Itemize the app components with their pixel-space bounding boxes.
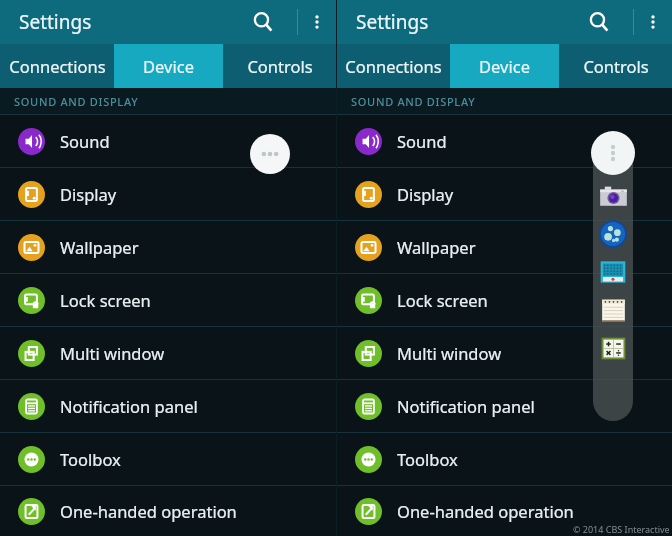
button[interactable]: Search xyxy=(579,2,619,42)
button[interactable]: Sound xyxy=(0,115,336,167)
button[interactable]: Notification panel xyxy=(337,380,672,432)
staticText: Toolbox xyxy=(60,448,121,470)
button[interactable]: Sound xyxy=(337,115,672,167)
button[interactable]: Display xyxy=(0,168,336,220)
staticText: Multi window xyxy=(60,342,165,364)
staticText: Controls xyxy=(247,55,313,77)
staticText: Wallpaper xyxy=(397,236,476,258)
button[interactable]: Controls xyxy=(559,44,672,88)
staticText: © 2014 CBS Interactive xyxy=(573,523,670,535)
staticText: Settings xyxy=(356,9,429,35)
button[interactable]: Toolbox xyxy=(250,134,290,174)
staticText: Device xyxy=(479,55,530,77)
staticText: Wallpaper xyxy=(60,236,139,258)
staticText: Settings xyxy=(19,9,92,35)
staticText: Display xyxy=(397,183,454,205)
staticText: Display xyxy=(60,183,117,205)
staticText: Multi window xyxy=(397,342,502,364)
staticText: Notification panel xyxy=(397,395,535,417)
staticText: Sound xyxy=(60,130,110,152)
button[interactable]: Wallpaper xyxy=(0,221,336,273)
button[interactable]: Display xyxy=(337,168,672,220)
button[interactable]: More options xyxy=(634,3,672,41)
button[interactable]: Calculator xyxy=(598,333,628,363)
staticText: One-handed operation xyxy=(397,500,574,522)
button[interactable]: Search xyxy=(243,2,283,42)
button[interactable]: Notification panel xyxy=(0,380,336,432)
staticText: Sound xyxy=(397,130,447,152)
button[interactable]: Device xyxy=(114,44,223,88)
button[interactable]: Voice recorder xyxy=(598,257,628,287)
staticText: Lock screen xyxy=(60,289,151,311)
button[interactable]: Wallpaper xyxy=(337,221,672,273)
button[interactable]: Lock screen xyxy=(337,274,672,326)
button[interactable]: Device xyxy=(450,44,559,88)
staticText: SOUND AND DISPLAY xyxy=(351,94,476,109)
button[interactable]: One-handed operation xyxy=(337,486,672,536)
staticText: SOUND AND DISPLAY xyxy=(14,94,139,109)
button[interactable]: Camera xyxy=(598,181,628,211)
button[interactable]: Toolbox menu xyxy=(591,131,635,175)
staticText: Notification panel xyxy=(60,395,198,417)
button[interactable]: Controls xyxy=(223,44,336,88)
button[interactable]: Memo xyxy=(598,295,628,325)
button[interactable]: Multi window xyxy=(337,327,672,379)
button[interactable]: Multi window xyxy=(0,327,336,379)
button[interactable]: One-handed operation xyxy=(0,486,336,536)
staticText: Connections xyxy=(9,55,106,77)
button[interactable]: Internet xyxy=(598,219,628,249)
staticText: Controls xyxy=(583,55,649,77)
button[interactable]: Toolbox xyxy=(337,433,672,485)
button[interactable]: Connections xyxy=(337,44,450,88)
staticText: Toolbox xyxy=(397,448,458,470)
staticText: Device xyxy=(143,55,194,77)
staticText: Connections xyxy=(345,55,442,77)
button[interactable]: More options xyxy=(298,3,336,41)
button[interactable]: Lock screen xyxy=(0,274,336,326)
button[interactable]: Connections xyxy=(0,44,114,88)
button[interactable]: Toolbox xyxy=(0,433,336,485)
staticText: One-handed operation xyxy=(60,500,237,522)
staticText: Lock screen xyxy=(397,289,488,311)
